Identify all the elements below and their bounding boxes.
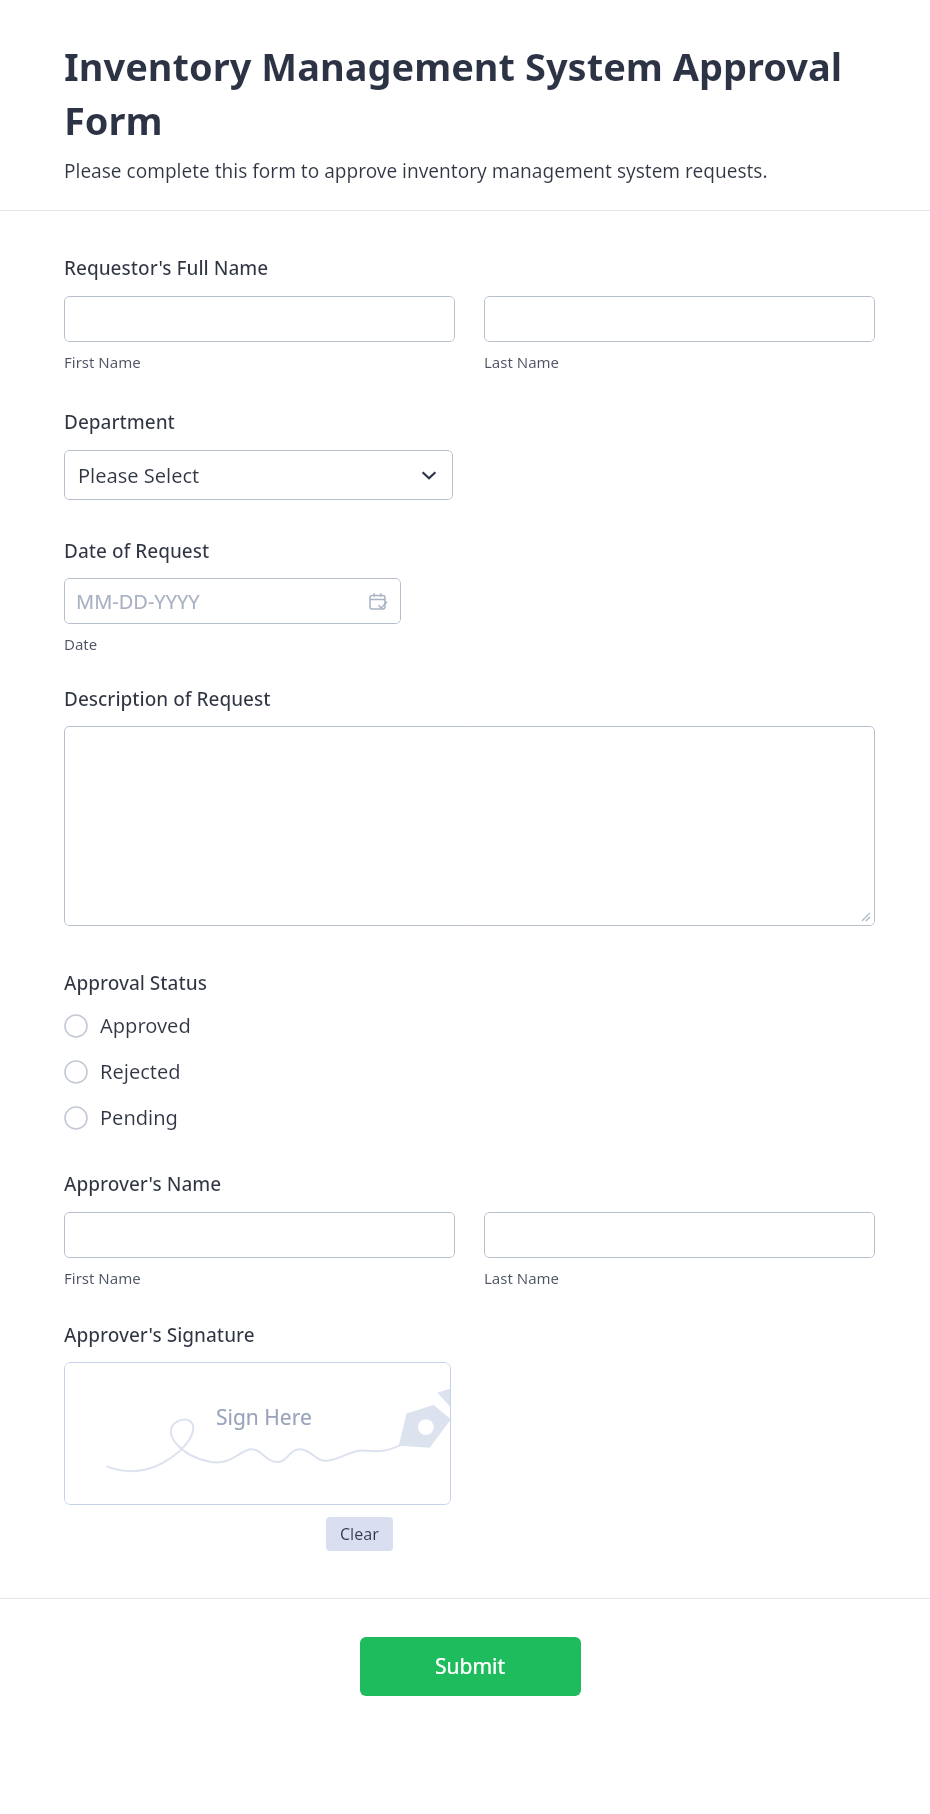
button[interactable]: Submit [360,1637,581,1696]
button[interactable] [484,1212,875,1258]
button[interactable] [484,296,875,342]
staticText: Department [64,409,175,435]
button[interactable]: Rejected [64,1056,364,1087]
other: Pick date [370,593,387,610]
button[interactable]: Sign here [64,1362,451,1505]
staticText: Please complete this form to approve inv… [64,158,768,184]
staticText: Sign Here [216,1403,312,1432]
staticText: Approver's Signature [64,1322,255,1348]
button[interactable]: Approved [64,1010,364,1041]
button[interactable] [64,296,455,342]
staticText: First Name [64,1268,141,1288]
staticText: MM-DD-YYYY [76,588,200,615]
staticText: Description of Request [64,686,271,712]
staticText: Clear [340,1523,379,1545]
staticText: Last Name [484,1268,560,1288]
button[interactable]: Clear [326,1517,393,1551]
staticText: Date of Request [64,538,210,564]
staticText: Inventory Management System Approval For… [64,40,866,146]
staticText: Pending [100,1104,178,1131]
staticText: Submit [435,1652,506,1681]
staticText: Approved [100,1012,191,1039]
button[interactable] [64,1212,455,1258]
staticText: Please Select [78,462,200,489]
button[interactable]: Please Select [64,450,453,500]
staticText: Date [64,634,98,654]
staticText: First Name [64,352,141,372]
staticText: Last Name [484,352,560,372]
staticText: Approver's Name [64,1171,222,1197]
staticText: Requestor's Full Name [64,255,269,281]
staticText: Approval Status [64,970,207,996]
staticText: Rejected [100,1058,181,1085]
button[interactable] [64,726,875,926]
button[interactable]: Pending [64,1102,364,1133]
button[interactable]: MM-DD-YYYY [64,578,401,624]
